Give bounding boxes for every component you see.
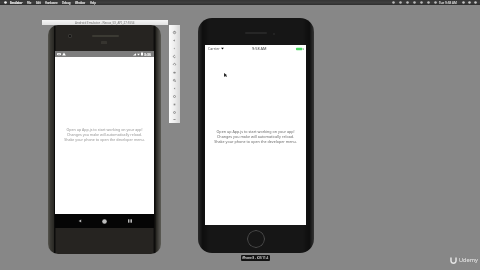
button[interactable]: Home button — [247, 230, 265, 248]
button[interactable]: Overview — [169, 100, 180, 108]
button[interactable]: Status item — [418, 0, 425, 5]
button[interactable]: Window — [73, 1, 88, 5]
staticText: Debug — [62, 1, 71, 5]
button[interactable]: Fold — [169, 108, 180, 116]
staticText: Android Emulator - Nexus_5X_API_27:5554 — [75, 21, 135, 25]
button[interactable]: Status item — [390, 0, 397, 5]
staticText: Edit — [36, 1, 41, 5]
button[interactable]: More — [169, 116, 180, 123]
button[interactable]: Power — [169, 28, 180, 36]
button[interactable]: Back — [73, 214, 86, 228]
button[interactable]: Back — [169, 84, 180, 92]
button[interactable]: Recent apps — [123, 214, 136, 228]
button[interactable]: Debug — [60, 1, 73, 5]
button[interactable]: Screenshot — [169, 68, 180, 76]
button[interactable]: Volume up — [169, 36, 180, 44]
staticText: Tue 9:58 AM — [439, 1, 457, 5]
button[interactable]: Status item — [466, 0, 472, 5]
button[interactable]: Help — [88, 1, 98, 5]
staticText: File — [27, 1, 32, 5]
button[interactable]: Rotate right — [169, 60, 180, 68]
staticText: Help — [90, 1, 96, 5]
button[interactable]: Status item — [472, 0, 478, 5]
button[interactable]: Status item — [460, 0, 466, 5]
staticText: Open up App.js to start working on your … — [214, 129, 297, 144]
button[interactable]: Status item — [397, 0, 404, 5]
button[interactable]: Zoom — [169, 76, 180, 84]
button[interactable]: Emulator — [8, 1, 25, 5]
staticText: 9:58 AM — [252, 46, 267, 51]
staticText: Carrier — [208, 46, 220, 51]
button[interactable]: Edit — [34, 1, 43, 5]
staticText: Open up App.js to start working on your … — [64, 127, 145, 142]
button[interactable]: Volume down — [169, 44, 180, 52]
button[interactable]: Status item — [432, 0, 439, 5]
staticText: 3:36 — [144, 52, 152, 57]
button[interactable]: Status item — [404, 0, 411, 5]
button[interactable]: Apple menu — [3, 0, 8, 5]
staticText: iPhone 8 - iOS 11.4 — [242, 256, 269, 260]
staticText: Udemy — [459, 256, 478, 264]
button[interactable]: Rotate left — [169, 52, 180, 60]
staticText: Emulator — [10, 1, 23, 5]
button[interactable]: Hardware — [43, 1, 60, 5]
staticText: Window — [75, 1, 86, 5]
button[interactable]: Home — [169, 92, 180, 100]
button[interactable]: Status item — [411, 0, 418, 5]
button[interactable]: File — [25, 1, 34, 5]
button[interactable]: Status item — [425, 0, 432, 5]
staticText: Hardware — [45, 1, 58, 5]
button[interactable]: Home — [98, 214, 111, 228]
